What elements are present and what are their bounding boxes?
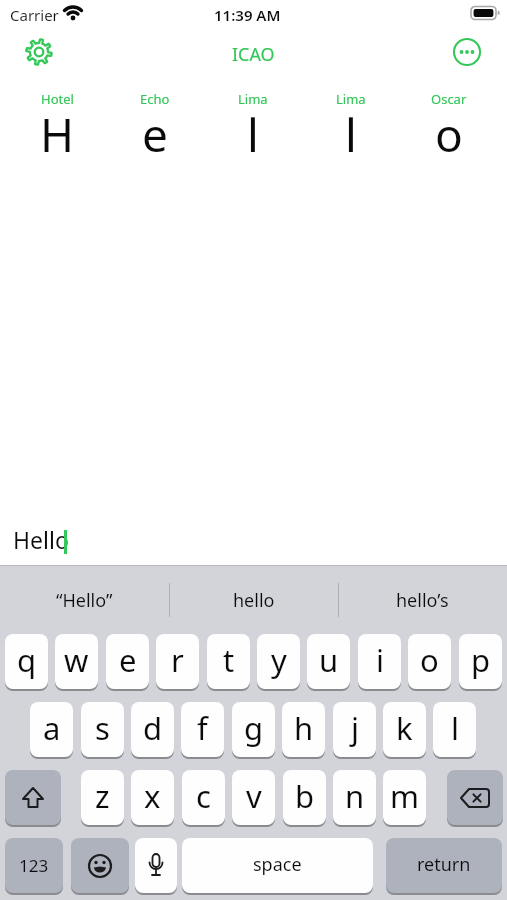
button[interactable]: r bbox=[156, 634, 199, 691]
button[interactable]: hello bbox=[169, 578, 338, 622]
staticText: f bbox=[197, 707, 208, 749]
staticText: space bbox=[253, 852, 302, 877]
button[interactable] bbox=[135, 838, 177, 895]
staticText: m bbox=[390, 775, 419, 817]
button[interactable]: c bbox=[182, 770, 225, 827]
staticText: x bbox=[144, 775, 161, 817]
button[interactable]: b bbox=[283, 770, 326, 827]
button[interactable]: 123 bbox=[5, 838, 63, 895]
staticText: i bbox=[376, 639, 384, 681]
button[interactable]: n bbox=[333, 770, 376, 827]
staticText: d bbox=[143, 707, 163, 749]
staticText: q bbox=[17, 639, 37, 681]
staticText: c bbox=[196, 775, 211, 817]
button[interactable] bbox=[25, 38, 53, 66]
staticText: p bbox=[471, 639, 491, 681]
button[interactable]: d bbox=[131, 702, 174, 759]
button[interactable]: “Hello” bbox=[0, 578, 169, 622]
button[interactable]: u bbox=[307, 634, 350, 691]
button[interactable]: f bbox=[181, 702, 224, 759]
staticText: t bbox=[223, 639, 235, 681]
staticText: o bbox=[420, 639, 439, 681]
button[interactable]: e bbox=[106, 634, 149, 691]
staticText: l bbox=[451, 707, 459, 749]
button[interactable]: t bbox=[207, 634, 250, 691]
staticText: “Hello” bbox=[56, 588, 113, 613]
button[interactable]: q bbox=[5, 634, 48, 691]
button[interactable]: x bbox=[131, 770, 174, 827]
staticText: y bbox=[271, 639, 287, 681]
staticText: g bbox=[244, 707, 264, 749]
staticText: 11:39 AM bbox=[214, 5, 281, 25]
button[interactable]: s bbox=[81, 702, 124, 759]
button[interactable]: space bbox=[182, 838, 373, 895]
button[interactable]: z bbox=[81, 770, 124, 827]
button[interactable]: l bbox=[433, 702, 476, 759]
staticText: l bbox=[345, 103, 357, 157]
button[interactable]: j bbox=[333, 702, 376, 759]
button[interactable]: y bbox=[257, 634, 300, 691]
button[interactable]: m bbox=[383, 770, 426, 827]
staticText: Lima bbox=[238, 90, 268, 108]
staticText: ICAO bbox=[232, 42, 275, 67]
button[interactable]: o bbox=[408, 634, 451, 691]
button[interactable]: return bbox=[386, 838, 502, 895]
staticText: s bbox=[95, 707, 110, 749]
staticText: 123 bbox=[19, 854, 49, 877]
staticText: Hotel bbox=[41, 90, 74, 108]
button[interactable]: h bbox=[282, 702, 325, 759]
staticText: e bbox=[142, 103, 168, 157]
staticText: w bbox=[64, 639, 89, 681]
staticText: Lima bbox=[336, 90, 366, 108]
staticText: Carrier bbox=[10, 5, 59, 25]
staticText: u bbox=[319, 639, 339, 681]
staticText: b bbox=[295, 775, 315, 817]
staticText: h bbox=[294, 707, 314, 749]
staticText: hello bbox=[233, 588, 275, 613]
staticText: k bbox=[396, 707, 413, 749]
staticText: Echo bbox=[140, 90, 170, 108]
staticText: l bbox=[247, 103, 259, 157]
button[interactable] bbox=[447, 770, 503, 827]
button[interactable] bbox=[451, 36, 483, 68]
staticText: H bbox=[40, 103, 75, 157]
button[interactable]: p bbox=[459, 634, 502, 691]
button[interactable] bbox=[71, 838, 129, 895]
staticText: a bbox=[43, 707, 61, 749]
button[interactable]: g bbox=[232, 702, 275, 759]
staticText: n bbox=[345, 775, 365, 817]
button[interactable]: v bbox=[232, 770, 275, 827]
staticText: j bbox=[351, 707, 359, 749]
staticText: o bbox=[435, 103, 463, 157]
staticText: hello’s bbox=[396, 588, 449, 613]
button[interactable]: hello’s bbox=[338, 578, 507, 622]
button[interactable]: a bbox=[30, 702, 73, 759]
staticText: e bbox=[119, 639, 137, 681]
button[interactable]: k bbox=[383, 702, 426, 759]
staticText: Hello bbox=[13, 524, 69, 555]
staticText: r bbox=[171, 639, 184, 681]
staticText: Oscar bbox=[431, 90, 467, 108]
staticText: z bbox=[95, 775, 110, 817]
staticText: v bbox=[246, 775, 262, 817]
button[interactable]: i bbox=[358, 634, 401, 691]
staticText: return bbox=[417, 852, 471, 877]
button[interactable] bbox=[5, 770, 61, 827]
button[interactable]: w bbox=[55, 634, 98, 691]
